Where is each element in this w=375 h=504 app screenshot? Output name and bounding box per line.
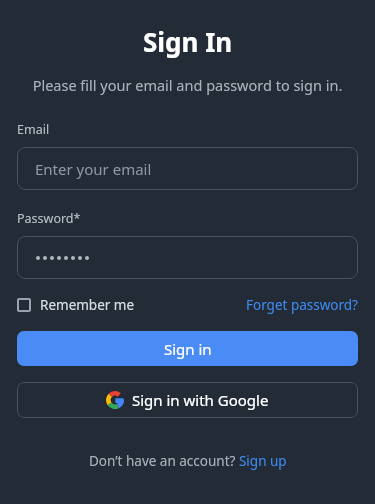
staticText: Enter your email xyxy=(35,159,152,179)
button[interactable]: Don’t have an account? Sign up xyxy=(17,452,358,470)
button[interactable]: Remember me xyxy=(17,296,135,314)
staticText: Please fill your email and password to s… xyxy=(17,75,358,95)
staticText: Don’t have an account? Sign up xyxy=(89,452,287,470)
staticText: Forget password? xyxy=(246,296,358,314)
button[interactable]: Google xyxy=(17,382,358,418)
staticText: Sign in with Google xyxy=(132,390,269,410)
button[interactable]: Forget password? xyxy=(246,296,358,314)
staticText: Sign In xyxy=(143,24,233,59)
button[interactable]: Sign in xyxy=(17,331,358,366)
button[interactable]: Enter your email xyxy=(17,147,358,190)
staticText: Password* xyxy=(17,210,81,227)
staticText: Sign in xyxy=(164,339,212,359)
staticText: Email xyxy=(17,121,50,138)
button[interactable] xyxy=(17,236,358,279)
other: Google xyxy=(106,391,124,409)
staticText: Remember me xyxy=(40,296,135,314)
